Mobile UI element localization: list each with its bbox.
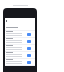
button[interactable]: Open: [5, 37, 35, 44]
button[interactable]: Open: [5, 44, 35, 51]
button[interactable]: Open: [27, 33, 31, 36]
button[interactable]: Open: [5, 58, 35, 65]
button[interactable]: Open: [27, 47, 31, 50]
button[interactable]: Open: [27, 40, 31, 43]
button[interactable]: Open: [27, 54, 31, 57]
button[interactable]: Menu: [5, 18, 35, 24]
button[interactable]: Open: [5, 30, 35, 37]
button[interactable]: Open: [27, 61, 31, 64]
button[interactable]: Open: [5, 51, 35, 58]
